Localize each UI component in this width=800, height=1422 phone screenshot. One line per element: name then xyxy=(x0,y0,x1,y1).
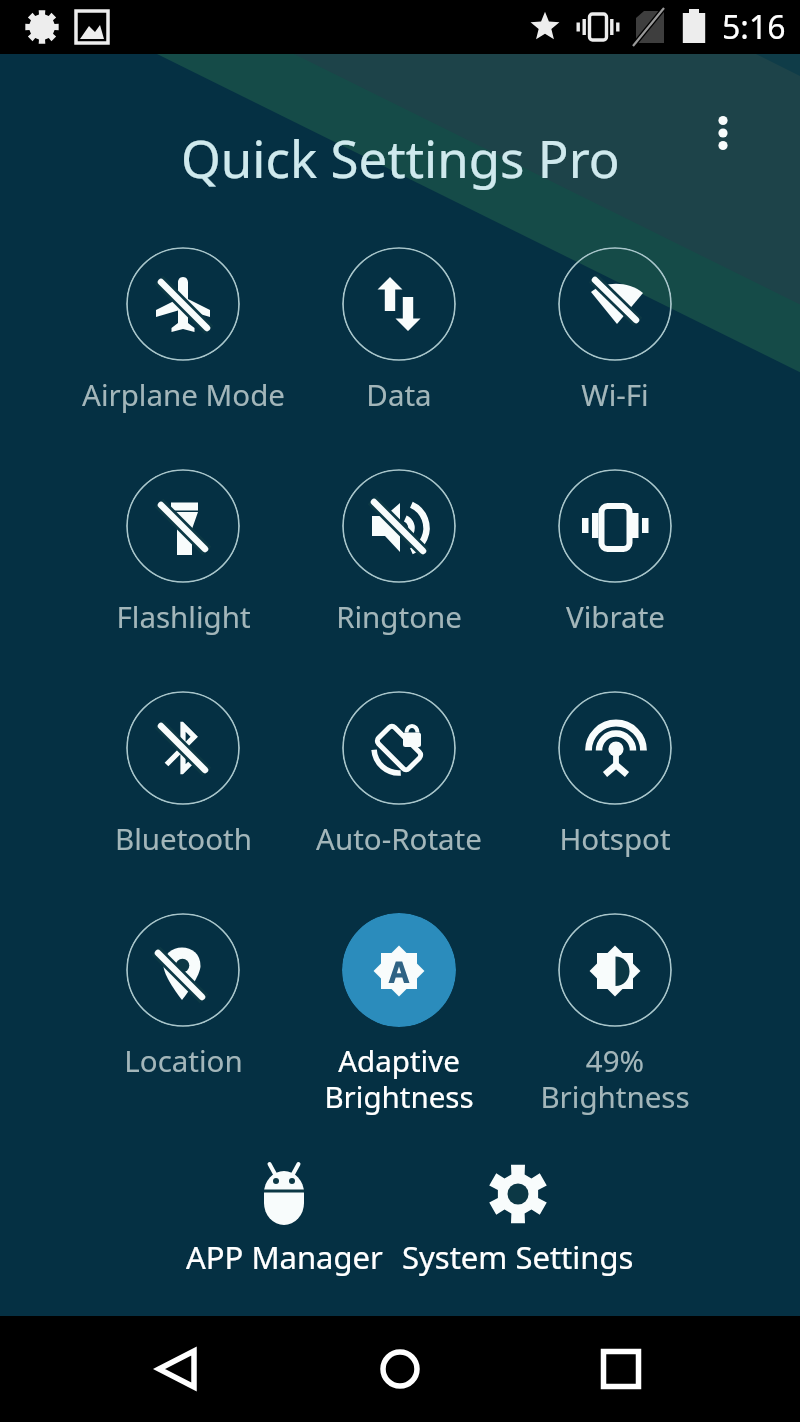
staticText: Data xyxy=(366,374,432,414)
staticText: Wi-Fi xyxy=(581,374,649,414)
button[interactable]: Auto-Rotate xyxy=(291,691,507,858)
button[interactable]: Adaptive Brightness xyxy=(291,913,507,1117)
button[interactable]: Airplane Mode xyxy=(75,247,291,414)
button[interactable]: Hotspot xyxy=(507,691,723,858)
staticText: Location xyxy=(124,1040,243,1080)
staticText: System Settings xyxy=(402,1236,634,1278)
button[interactable]: Back xyxy=(128,1319,228,1419)
button[interactable]: 49% Brightness xyxy=(507,913,723,1117)
button[interactable]: Data xyxy=(291,247,507,414)
button[interactable]: More options xyxy=(697,107,749,159)
button[interactable]: Vibrate xyxy=(507,469,723,636)
button[interactable]: Flashlight xyxy=(75,469,291,636)
staticText: APP Manager xyxy=(186,1236,383,1278)
button[interactable]: Home xyxy=(350,1319,450,1419)
staticText: Quick Settings Pro xyxy=(181,123,620,192)
button[interactable]: Recent apps xyxy=(571,1319,671,1419)
staticText: Ringtone xyxy=(336,596,462,636)
button[interactable]: Ringtone xyxy=(291,469,507,636)
button[interactable]: APP Manager xyxy=(174,1161,394,1278)
staticText: Adaptive Brightness xyxy=(324,1040,474,1117)
staticText: 5:16 xyxy=(722,5,786,49)
button[interactable]: Bluetooth xyxy=(75,691,291,858)
staticText: Flashlight xyxy=(116,596,251,636)
button[interactable]: System Settings xyxy=(388,1161,648,1278)
staticText: Hotspot xyxy=(559,818,671,858)
staticText: Bluetooth xyxy=(115,818,252,858)
button[interactable]: Wi-Fi xyxy=(507,247,723,414)
staticText: Airplane Mode xyxy=(82,374,285,414)
staticText: Auto-Rotate xyxy=(316,818,482,858)
staticText: 49% Brightness xyxy=(540,1040,690,1117)
staticText: Vibrate xyxy=(566,596,665,636)
button[interactable]: Location xyxy=(75,913,291,1080)
